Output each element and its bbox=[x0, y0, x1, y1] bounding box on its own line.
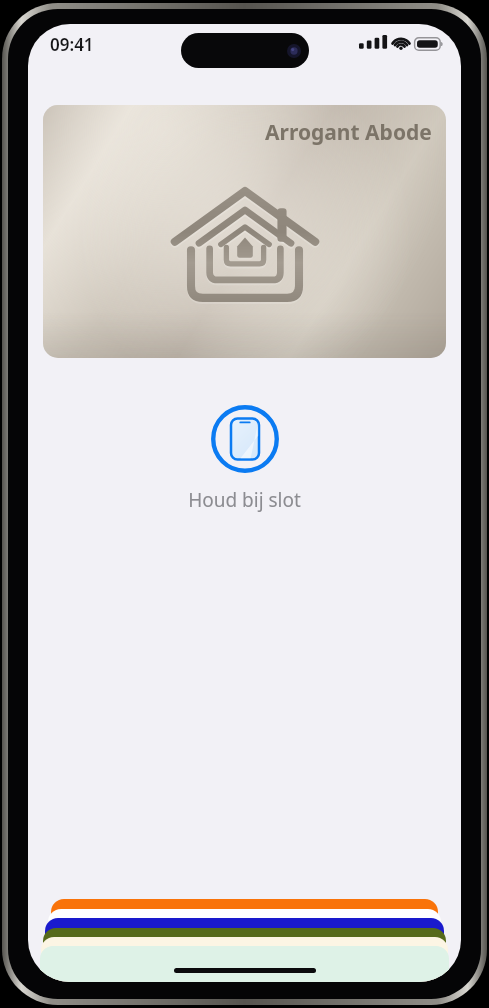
button[interactable] bbox=[51, 899, 438, 982]
staticText: 09:41 bbox=[50, 33, 94, 56]
button[interactable] bbox=[41, 937, 448, 982]
staticText: Houd bij slot bbox=[188, 487, 301, 513]
button[interactable] bbox=[40, 946, 449, 982]
button[interactable]: Houd bij slot bbox=[188, 404, 301, 513]
button[interactable] bbox=[48, 909, 441, 982]
other: Houd bij slot bbox=[210, 404, 280, 474]
button[interactable] bbox=[43, 928, 446, 982]
button[interactable] bbox=[45, 918, 444, 982]
staticText: Arrogant Abode bbox=[265, 118, 432, 147]
button[interactable]: Arrogant Abode bbox=[43, 105, 446, 358]
